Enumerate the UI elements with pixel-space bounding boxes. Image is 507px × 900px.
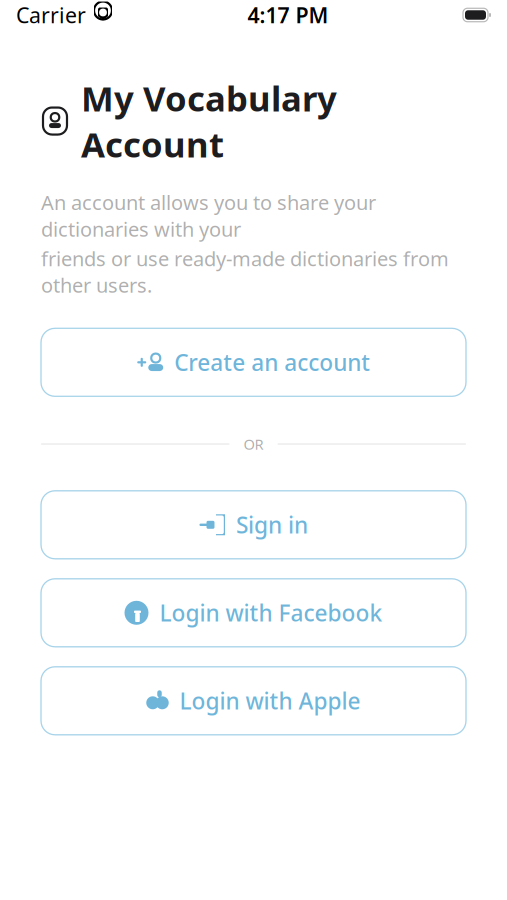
staticText: An account allows you to share your dict… [41, 189, 376, 242]
button[interactable]: Sign in [41, 491, 466, 559]
staticText: Sign in [236, 510, 308, 540]
staticText: OR [243, 434, 263, 454]
staticText: My Vocabulary Account [81, 75, 337, 167]
staticText: friends or use ready-made dictionaries f… [41, 245, 449, 298]
staticText: Create an account [174, 347, 370, 377]
staticText: Login with Apple [179, 686, 360, 716]
button[interactable]: Login with Facebook [41, 579, 466, 647]
button[interactable]: Login with Apple [41, 667, 466, 735]
staticText: 4:17 PM [247, 1, 328, 29]
staticText: Login with Facebook [159, 598, 382, 628]
staticText: Carrier [16, 1, 86, 29]
button[interactable]: Create an account [41, 328, 466, 396]
